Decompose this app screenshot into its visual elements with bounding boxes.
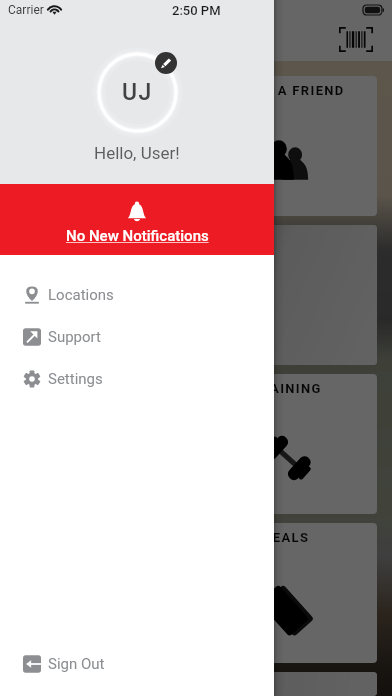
staticText: DEALS [263,530,310,545]
button[interactable]: DEALS [15,523,377,663]
staticText: TRAINING [251,381,322,396]
button[interactable] [15,225,377,365]
staticText: UJ [122,79,153,106]
button[interactable]: Settings [0,358,274,400]
button[interactable]: TRAINING [15,374,377,514]
staticText: Support [48,328,101,346]
button[interactable]: Scan barcode [334,17,378,61]
button[interactable]: No New Notifications [0,184,274,255]
staticText: 2:50 PM [172,3,221,18]
button[interactable] [15,672,377,696]
staticText: REFER A FRIEND [228,83,345,98]
staticText: Locations [48,286,114,304]
staticText: Hello, User! [94,143,180,163]
button[interactable]: REFER A FRIEND [15,76,377,216]
button[interactable]: Support [0,316,274,358]
staticText: Settings [48,370,103,388]
staticText: No New Notifications [66,227,209,245]
button[interactable]: Locations [0,274,274,316]
staticText: Sign Out [48,655,105,673]
staticText: Carrier [8,3,44,17]
button[interactable]: Edit profile [155,52,177,74]
button[interactable]: Sign Out [0,643,274,685]
